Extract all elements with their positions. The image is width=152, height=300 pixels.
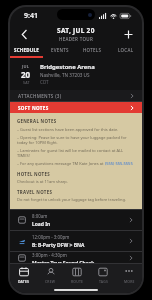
staticText: SAT, JUL 20: [57, 26, 95, 35]
staticText: Nashville, TN 37203 US: [40, 72, 90, 78]
staticText: HEADER TOUR: [59, 36, 94, 42]
button[interactable]: DATES: [10, 264, 37, 286]
staticText: Bridgestone Arena: [40, 63, 95, 71]
staticText: HOTELS: [83, 47, 102, 53]
button[interactable]: MORE: [116, 264, 142, 286]
button[interactable]: ATTACHMENTS (3): [10, 90, 142, 101]
button[interactable]: 8:00am: [10, 210, 142, 230]
staticText: CDT: [40, 79, 49, 85]
button[interactable]: 3:00pm - 4:30pm: [10, 252, 142, 263]
staticText: Do not forget to unlock your luggage tag…: [17, 197, 126, 202]
staticText: GENERAL NOTES: [17, 118, 57, 124]
staticText: – Guest list sections have been approved…: [17, 127, 119, 132]
button[interactable]: Back: [16, 26, 32, 42]
button[interactable]: SOFT NOTES: [10, 102, 142, 113]
staticText: ROUTE: [71, 279, 84, 284]
button[interactable]: EVENTS: [43, 44, 76, 56]
staticText: SOFT NOTES: [18, 105, 49, 111]
staticText: 20: [21, 69, 31, 80]
staticText: Checkout is at 11am sharp.: [17, 179, 68, 184]
staticText: TAGS: [99, 279, 108, 284]
button[interactable]: HOTELS: [76, 44, 109, 56]
staticText: 3:00pm - 4:30pm: [32, 252, 67, 258]
button[interactable]: 12:00pm - 3:00pm: [10, 231, 142, 251]
button[interactable]: JUL: [10, 58, 142, 90]
staticText: 12:00pm - 3:00pm: [32, 234, 70, 240]
staticText: DATES: [18, 279, 30, 284]
staticText: HOTEL NOTES: [17, 171, 50, 177]
staticText: SAT: [23, 80, 30, 85]
staticText: – Laminates for guest list will be maile…: [17, 148, 135, 158]
staticText: SCHEDULE: [14, 47, 40, 53]
staticText: LOCAL: [118, 47, 134, 53]
staticText: ATTACHMENTS (3): [18, 93, 62, 99]
staticText: EVENTS: [51, 47, 69, 53]
staticText: CREW: [45, 279, 56, 284]
staticText: – For any questions message TM Kate Jone…: [17, 161, 105, 166]
staticText: JUL: [22, 64, 30, 69]
staticText: 9:41: [24, 11, 38, 21]
button[interactable]: SCHEDULE: [10, 44, 43, 56]
staticText: MORE: [124, 279, 135, 284]
button[interactable]: ROUTE: [64, 264, 90, 286]
staticText: – Opening: Pease be sure to have your lu…: [17, 135, 135, 145]
staticText: 8:00am: [32, 213, 48, 219]
button[interactable]: TAGS: [90, 264, 116, 286]
button[interactable]: CREW: [37, 264, 64, 286]
staticText: (555) 555-5555: [105, 161, 133, 166]
staticText: Load In: [32, 221, 51, 228]
staticText: TRAVEL NOTES: [17, 189, 53, 195]
button[interactable]: LOCAL: [109, 44, 142, 56]
button[interactable]: Add: [120, 26, 136, 42]
staticText: Master Tour Sound Check: [32, 260, 95, 263]
staticText: B: B-Party DFW > BNA: [32, 242, 85, 249]
